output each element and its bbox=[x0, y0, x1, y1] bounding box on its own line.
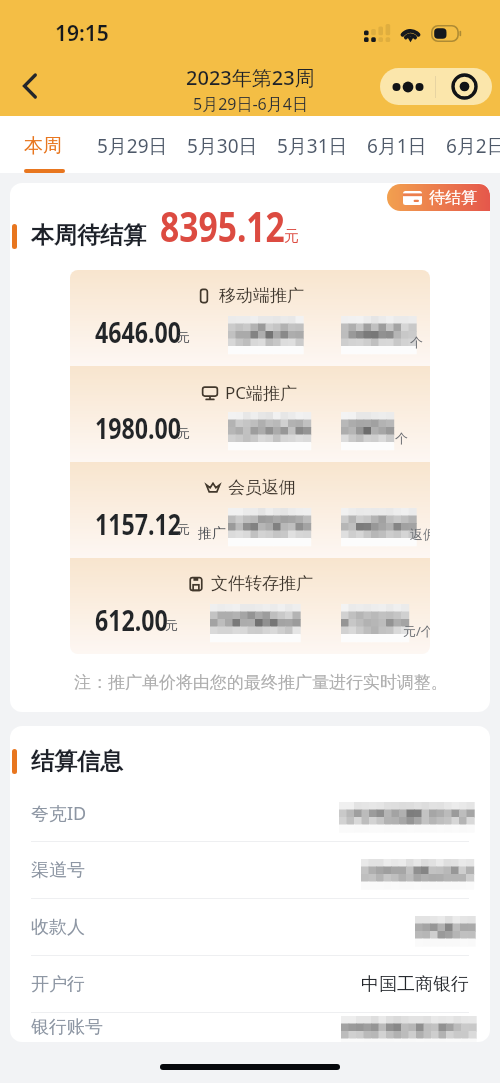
button[interactable]: 5月30日 bbox=[187, 132, 258, 158]
button[interactable]: 移动端推广 bbox=[70, 270, 430, 366]
staticText: 6月2日 bbox=[446, 133, 500, 159]
staticText: 本周 bbox=[24, 134, 62, 158]
button[interactable]: 6月1日 bbox=[367, 132, 427, 158]
button[interactable]: 5月31日 bbox=[277, 132, 348, 158]
staticText: 元 bbox=[165, 617, 178, 633]
staticText: 4646.00 bbox=[95, 312, 181, 351]
staticText: PC端推广 bbox=[225, 381, 298, 404]
staticText: 8395.12 bbox=[160, 197, 285, 254]
staticText: 元 bbox=[177, 425, 190, 441]
button[interactable]: PC端推广 bbox=[70, 366, 430, 462]
button[interactable]: 待结算 bbox=[387, 184, 490, 211]
staticText: 注：推广单价将由您的最终推广量进行实时调整。 bbox=[74, 672, 444, 693]
staticText: 元 bbox=[177, 329, 190, 345]
staticText: 19:15 bbox=[55, 19, 109, 48]
staticText: 开户行 bbox=[31, 973, 85, 996]
staticText: 个 bbox=[395, 430, 408, 446]
staticText: 本周待结算 bbox=[31, 221, 146, 250]
staticText: 612.00 bbox=[95, 600, 169, 639]
button[interactable]: 6月2日 bbox=[446, 132, 500, 158]
button[interactable]: More options bbox=[380, 68, 435, 105]
staticText: 中国工商银行 bbox=[361, 973, 469, 996]
staticText: 2023年第23周 bbox=[186, 64, 315, 91]
staticText: 移动端推广 bbox=[219, 285, 304, 306]
staticText: 待结算 bbox=[429, 188, 477, 208]
staticText: 推广 bbox=[198, 525, 226, 543]
staticText: 5月31日 bbox=[277, 133, 348, 159]
staticText: 银行账号 bbox=[31, 1016, 103, 1039]
staticText: 收款人 bbox=[31, 916, 85, 939]
staticText: 元 bbox=[177, 521, 190, 537]
staticText: 1157.12 bbox=[95, 504, 181, 543]
staticText: 返佣 bbox=[410, 526, 430, 542]
button[interactable]: 收款人 bbox=[10, 899, 490, 956]
button[interactable]: 夸克ID bbox=[10, 785, 490, 842]
staticText: 5月30日 bbox=[187, 133, 258, 159]
staticText: 会员返佣 bbox=[228, 477, 296, 498]
button[interactable]: 渠道号 bbox=[10, 842, 490, 899]
staticText: 个 bbox=[410, 334, 423, 350]
staticText: 元 bbox=[284, 227, 299, 246]
staticText: 夸克ID bbox=[31, 801, 87, 826]
staticText: 元/个 bbox=[403, 622, 430, 640]
staticText: 1980.00 bbox=[95, 408, 181, 447]
button[interactable]: Back bbox=[8, 64, 52, 108]
button[interactable]: 开户行 bbox=[10, 956, 490, 1013]
staticText: 文件转存推广 bbox=[211, 573, 313, 594]
button[interactable]: 5月29日 bbox=[97, 132, 168, 158]
staticText: 6月1日 bbox=[367, 133, 427, 159]
button[interactable]: 本周 bbox=[24, 133, 62, 157]
staticText: 渠道号 bbox=[31, 859, 85, 882]
button[interactable]: 文件转存推广 bbox=[70, 558, 430, 654]
staticText: 5月29日-6月4日 bbox=[193, 93, 308, 115]
staticText: 5月29日 bbox=[97, 133, 168, 159]
staticText: 结算信息 bbox=[31, 747, 123, 776]
button[interactable]: 会员返佣 bbox=[70, 462, 430, 558]
button[interactable]: Close mini program bbox=[436, 68, 492, 105]
button[interactable]: 银行账号 bbox=[10, 1013, 490, 1042]
